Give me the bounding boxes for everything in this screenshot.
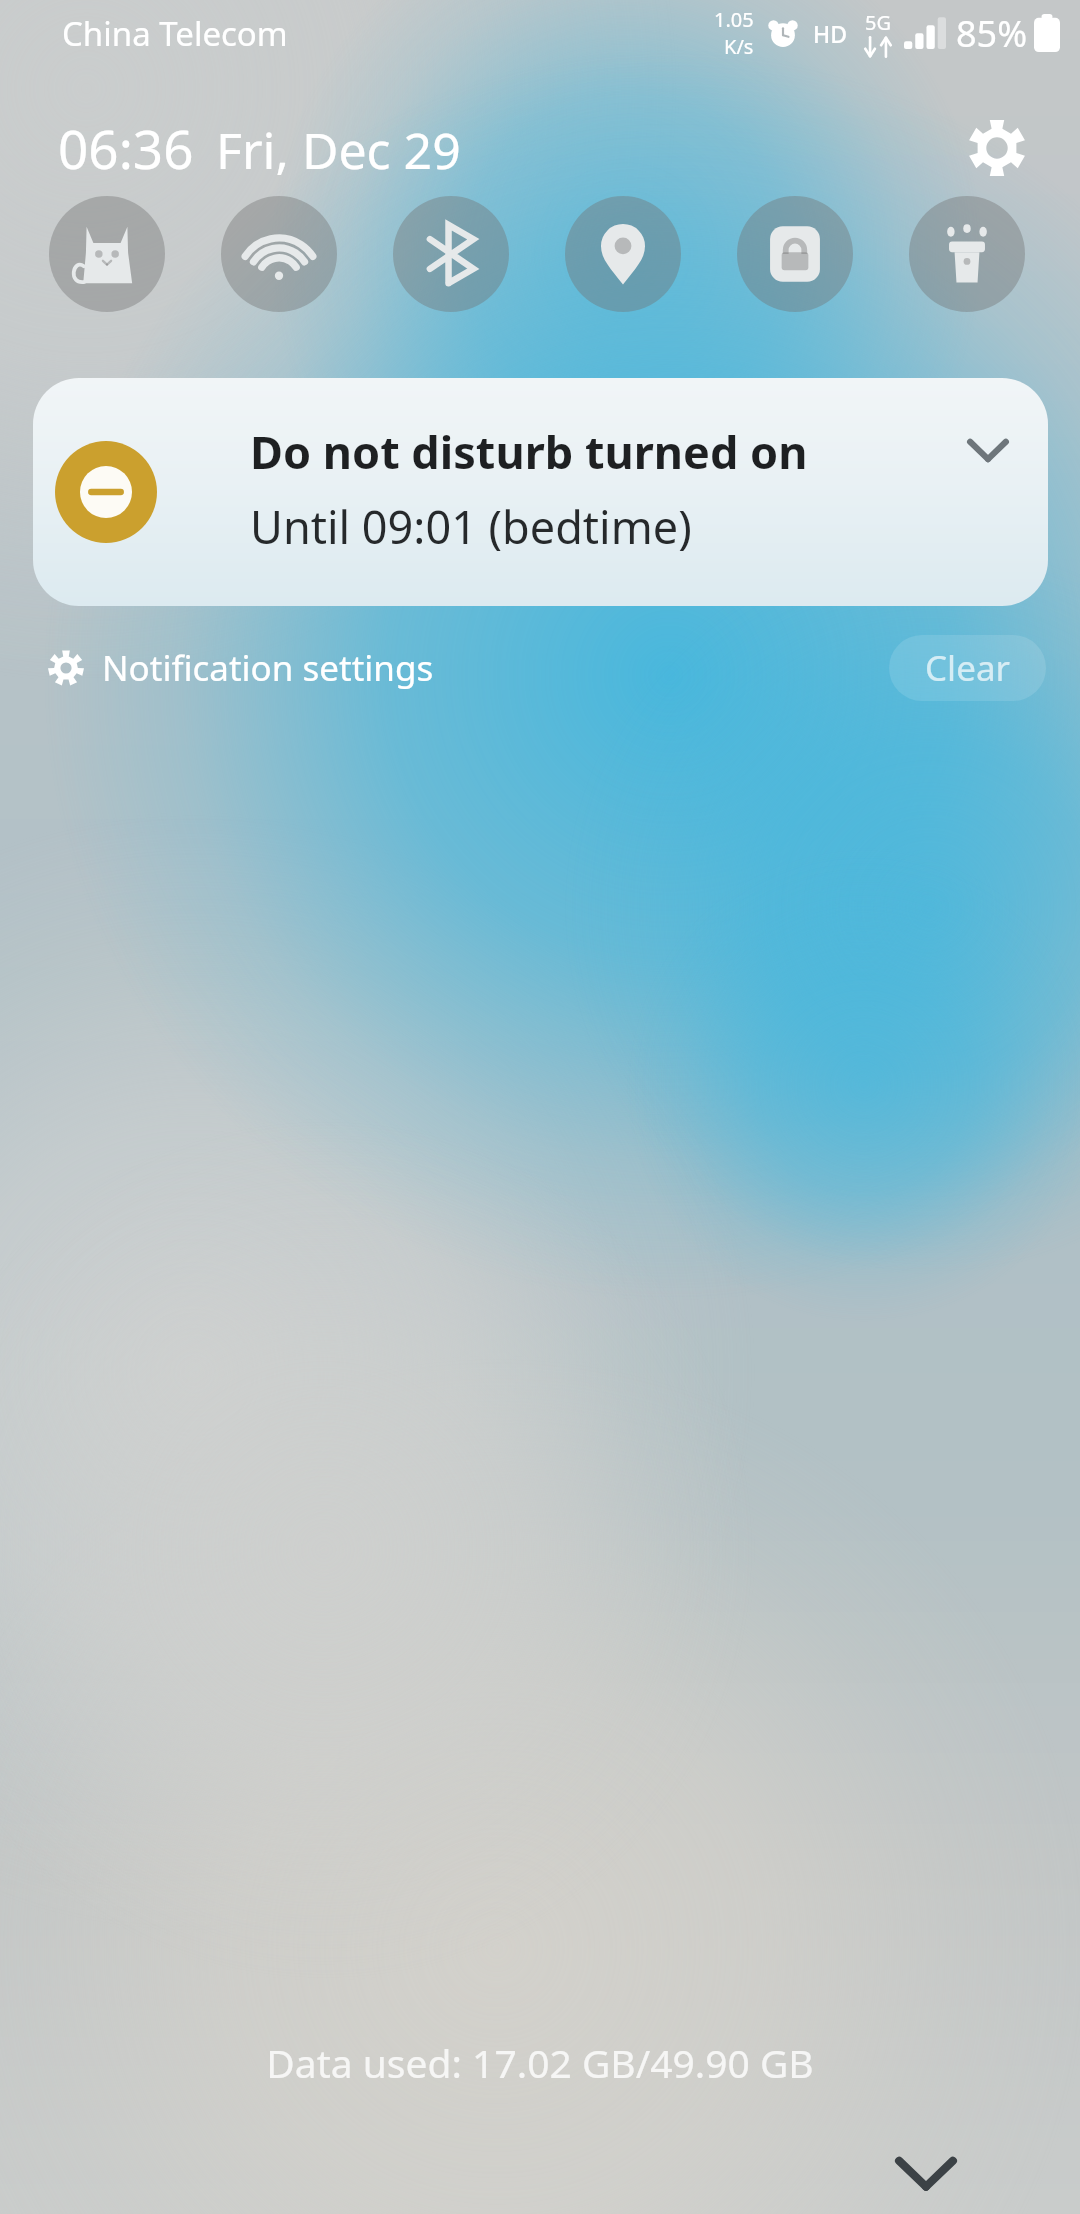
button[interactable]: Settings — [952, 103, 1042, 193]
button[interactable]: Silent mode — [49, 196, 165, 312]
button[interactable]: Do not disturb turned on — [33, 378, 1048, 606]
button[interactable]: Wi-Fi — [221, 196, 337, 312]
staticText: K/s — [724, 33, 754, 60]
staticText: Clear — [925, 644, 1010, 692]
button[interactable]: Screen lock — [737, 196, 853, 312]
button[interactable]: 06:36 — [58, 112, 461, 184]
button[interactable]: Flashlight — [909, 196, 1025, 312]
staticText: China Telecom — [62, 11, 288, 56]
staticText: 85% — [956, 9, 1028, 58]
staticText: Data used: 17.02 GB/49.90 GB — [266, 2036, 814, 2089]
button[interactable]: Clear — [889, 635, 1046, 701]
button[interactable]: Expand notification — [948, 410, 1028, 490]
staticText: Notification settings — [102, 644, 434, 692]
button[interactable]: Notification settings — [42, 638, 440, 698]
staticText: Until 09:01 (bedtime) — [250, 496, 692, 557]
staticText: Do not disturb turned on — [250, 421, 808, 482]
staticText: 1.05 — [714, 6, 754, 33]
staticText: Fri, Dec 29 — [216, 116, 461, 184]
button[interactable]: Collapse panel — [860, 2136, 992, 2210]
button[interactable]: Bluetooth — [393, 196, 509, 312]
button[interactable]: Location — [565, 196, 681, 312]
staticText: HD — [813, 18, 848, 49]
staticText: 06:36 — [58, 112, 194, 184]
staticText: 5G — [865, 9, 891, 36]
